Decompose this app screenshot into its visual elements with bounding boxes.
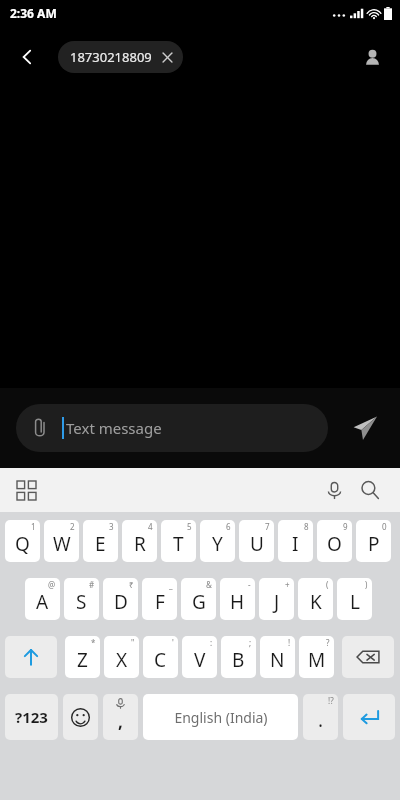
button[interactable]: ( xyxy=(298,578,333,620)
staticText: 4 xyxy=(148,521,153,532)
staticText: N xyxy=(270,647,285,673)
button[interactable]: " xyxy=(104,636,139,678)
staticText: C xyxy=(154,647,167,673)
button[interactable]: # xyxy=(64,578,99,620)
button[interactable]: - xyxy=(220,578,255,620)
staticText: J xyxy=(274,589,280,615)
staticText: P xyxy=(368,531,380,557)
staticText: 6 xyxy=(226,521,231,532)
button[interactable]: _ xyxy=(142,578,177,620)
staticText: F xyxy=(155,589,165,615)
button[interactable]: * xyxy=(65,636,100,678)
staticText: X xyxy=(116,647,128,673)
staticText: ' xyxy=(172,637,174,648)
button[interactable] xyxy=(5,636,57,678)
staticText: # xyxy=(89,579,95,590)
staticText: T xyxy=(173,531,184,557)
button[interactable]: Apps xyxy=(8,472,44,508)
staticText: 5 xyxy=(187,521,192,532)
staticText: 7 xyxy=(265,521,270,532)
staticText: _ xyxy=(169,579,173,590)
staticText: Y xyxy=(212,531,223,557)
staticText: H xyxy=(230,589,245,615)
button[interactable]: !? xyxy=(303,694,338,740)
staticText: ! xyxy=(288,637,291,648)
staticText: 1 xyxy=(31,521,36,532)
button[interactable]: 4 xyxy=(122,520,157,562)
button[interactable]: 5 xyxy=(161,520,196,562)
button[interactable]: Back xyxy=(6,36,48,78)
staticText: ₹ xyxy=(129,579,134,590)
button[interactable]: 0 xyxy=(356,520,391,562)
button[interactable] xyxy=(342,636,394,678)
staticText: , xyxy=(118,710,123,733)
button[interactable]: ; xyxy=(221,636,256,678)
staticText: V xyxy=(194,647,206,673)
staticText: G xyxy=(192,589,206,615)
staticText: 3 xyxy=(109,521,114,532)
button[interactable]: ! xyxy=(260,636,295,678)
staticText: @ xyxy=(48,579,56,590)
staticText: L xyxy=(350,589,360,615)
staticText: O xyxy=(327,531,342,557)
button[interactable]: & xyxy=(181,578,216,620)
button[interactable]: Send xyxy=(328,400,400,456)
staticText: - xyxy=(248,579,251,590)
button[interactable]: ? xyxy=(299,636,334,678)
button[interactable]: @ xyxy=(25,578,60,620)
staticText: ( xyxy=(326,579,329,590)
staticText: I xyxy=(292,531,299,557)
button[interactable]: 2 xyxy=(44,520,79,562)
staticText: 0 xyxy=(382,521,387,532)
button[interactable]: ₹ xyxy=(103,578,138,620)
button[interactable]: 1 xyxy=(5,520,40,562)
staticText: " xyxy=(131,637,135,648)
staticText: 8 xyxy=(304,521,309,532)
button[interactable]: , xyxy=(103,694,138,740)
button[interactable]: 6 xyxy=(200,520,235,562)
button[interactable]: English (India) xyxy=(143,694,298,740)
staticText: R xyxy=(134,531,146,557)
button[interactable]: 3 xyxy=(83,520,118,562)
staticText: 2 xyxy=(70,521,75,532)
staticText: + xyxy=(285,579,290,590)
button[interactable]: 7 xyxy=(239,520,274,562)
button[interactable] xyxy=(343,694,395,740)
button[interactable]: Search xyxy=(352,472,388,508)
staticText: : xyxy=(210,637,213,648)
button[interactable]: ?123 xyxy=(5,694,58,740)
staticText: U xyxy=(250,531,264,557)
staticText: ) xyxy=(365,579,368,590)
staticText: B xyxy=(232,647,245,673)
button[interactable]: Text message xyxy=(16,404,328,452)
staticText: E xyxy=(95,531,106,557)
staticText: ; xyxy=(249,637,252,648)
button[interactable]: ) xyxy=(337,578,372,620)
staticText: K xyxy=(310,589,322,615)
staticText: Text message xyxy=(66,418,162,438)
staticText: Z xyxy=(77,647,88,673)
button[interactable]: 8 xyxy=(278,520,313,562)
staticText: !? xyxy=(328,695,334,706)
staticText: 2:36 AM xyxy=(10,5,57,21)
staticText: 9 xyxy=(343,521,348,532)
staticText: ?123 xyxy=(15,707,48,727)
staticText: W xyxy=(53,531,71,557)
staticText: S xyxy=(76,589,87,615)
staticText: . xyxy=(318,707,324,733)
button[interactable]: 18730218809 xyxy=(58,41,183,73)
staticText: & xyxy=(206,579,212,590)
button[interactable]: + xyxy=(259,578,294,620)
staticText: Q xyxy=(15,531,30,557)
staticText: 18730218809 xyxy=(70,48,152,66)
button[interactable]: Contact xyxy=(352,37,392,77)
button[interactable]: ' xyxy=(143,636,178,678)
button[interactable] xyxy=(63,694,98,740)
staticText: English (India) xyxy=(174,708,268,727)
button[interactable]: 9 xyxy=(317,520,352,562)
staticText: ? xyxy=(326,637,330,648)
button[interactable]: : xyxy=(182,636,217,678)
button[interactable]: Voice input xyxy=(316,472,352,508)
staticText: A xyxy=(36,589,49,615)
staticText: * xyxy=(91,637,96,648)
